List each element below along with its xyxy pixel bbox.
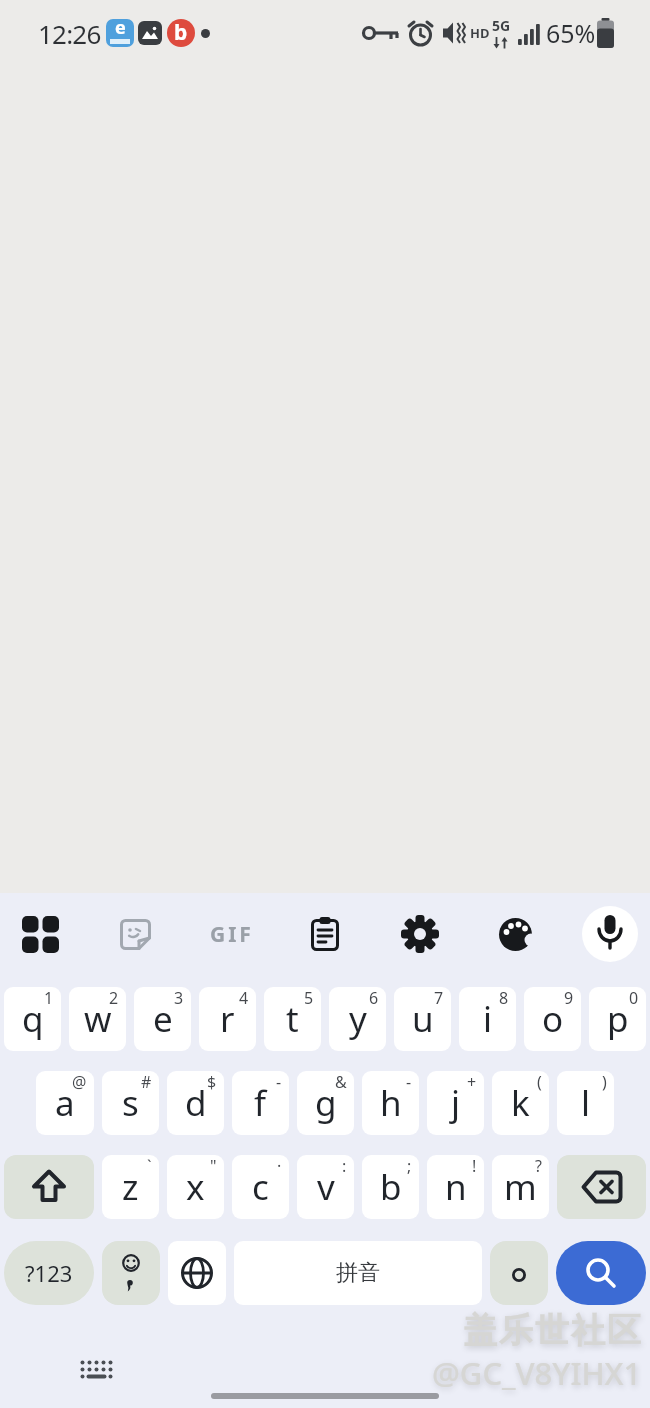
staticText: p [607,995,629,1043]
button[interactable]: u [394,987,451,1051]
staticText: o [542,995,564,1043]
staticText: y [349,995,367,1043]
staticText: h [380,1079,402,1127]
staticText: 5 [304,987,314,1009]
button[interactable]: y [329,987,386,1051]
staticText: ?123 [25,1258,73,1288]
staticText: 8 [499,987,509,1009]
button[interactable]: j [427,1071,484,1135]
button[interactable]: l [557,1071,614,1135]
button[interactable] [80,1360,113,1380]
staticText: l [581,1079,591,1127]
button[interactable]: g [297,1071,354,1135]
staticText: ) [602,1071,607,1093]
button[interactable]: v [297,1155,354,1219]
button[interactable]: p [589,987,646,1051]
button[interactable]: d [167,1071,224,1135]
button[interactable] [311,917,339,951]
button[interactable]: o [524,987,581,1051]
staticText: @ [72,1071,87,1093]
button[interactable]: s [102,1071,159,1135]
staticText: - [276,1071,282,1093]
staticText: + [467,1071,477,1093]
staticText: " [210,1155,217,1177]
button[interactable]: GIF [210,920,254,949]
staticText: r [220,995,235,1043]
staticText: u [412,995,434,1043]
button[interactable]: b [362,1155,419,1219]
button[interactable] [119,918,152,951]
staticText: # [141,1071,152,1093]
staticText: t [286,995,299,1043]
staticText: b [174,19,188,46]
staticText: s [122,1079,139,1127]
staticText: 6 [369,987,379,1009]
staticText: 0 [629,987,639,1009]
staticText: b [380,1163,402,1211]
staticText: e [153,995,173,1043]
staticText: 7 [434,987,444,1009]
button[interactable] [22,916,59,953]
staticText: 4 [239,987,249,1009]
staticText: 1 [44,987,54,1009]
button[interactable] [401,915,439,953]
staticText: g [315,1079,337,1127]
staticText: 3 [174,987,184,1009]
staticText: i [483,995,493,1043]
staticText: - [406,1071,412,1093]
button[interactable]: e [134,987,191,1051]
button[interactable]: r [199,987,256,1051]
staticText: q [22,995,44,1043]
button[interactable]: c [232,1155,289,1219]
staticText: @GC_V8YIHX1 [432,1352,642,1394]
staticText: 2 [109,987,119,1009]
staticText: ( [537,1071,542,1093]
staticText: j [451,1079,461,1127]
staticText: & [335,1071,347,1093]
button[interactable]: 拼音 [234,1241,482,1305]
staticText: d [185,1079,207,1127]
staticText: e [115,19,126,40]
button[interactable]: f [232,1071,289,1135]
button[interactable] [556,1241,646,1305]
button[interactable]: z [102,1155,159,1219]
staticText: c [252,1163,269,1211]
button[interactable]: t [264,987,321,1051]
button[interactable] [490,1241,548,1305]
button[interactable]: ?123 [4,1241,94,1305]
staticText: HD [470,24,490,42]
button[interactable]: k [492,1071,549,1135]
button[interactable]: m [492,1155,549,1219]
button[interactable] [497,916,534,953]
staticText: : [342,1155,347,1177]
staticText: k [511,1079,530,1127]
button[interactable]: w [69,987,126,1051]
button[interactable]: i [459,987,516,1051]
staticText: ; [407,1155,412,1177]
staticText: x [186,1163,205,1211]
button[interactable]: x [167,1155,224,1219]
button[interactable] [102,1241,160,1305]
staticText: 65% [546,16,596,50]
staticText: m [504,1163,537,1211]
staticText: 9 [564,987,574,1009]
button[interactable]: q [4,987,61,1051]
staticText: · [277,1155,282,1177]
button[interactable] [168,1241,226,1305]
staticText: w [84,995,112,1043]
button[interactable]: h [362,1071,419,1135]
button[interactable]: a [36,1071,94,1135]
staticText: f [254,1079,267,1127]
staticText: 12:26 [38,16,101,51]
staticText: 盖乐世社区 [462,1309,642,1352]
button[interactable] [4,1155,94,1219]
button[interactable] [557,1155,646,1219]
staticText: 5G [492,16,511,35]
staticText: 拼音 [336,1259,380,1287]
staticText: ` [147,1155,152,1177]
button[interactable] [582,906,638,962]
staticText: n [445,1163,467,1211]
staticText: ? [535,1155,542,1177]
staticText: $ [207,1071,217,1093]
button[interactable]: n [427,1155,484,1219]
